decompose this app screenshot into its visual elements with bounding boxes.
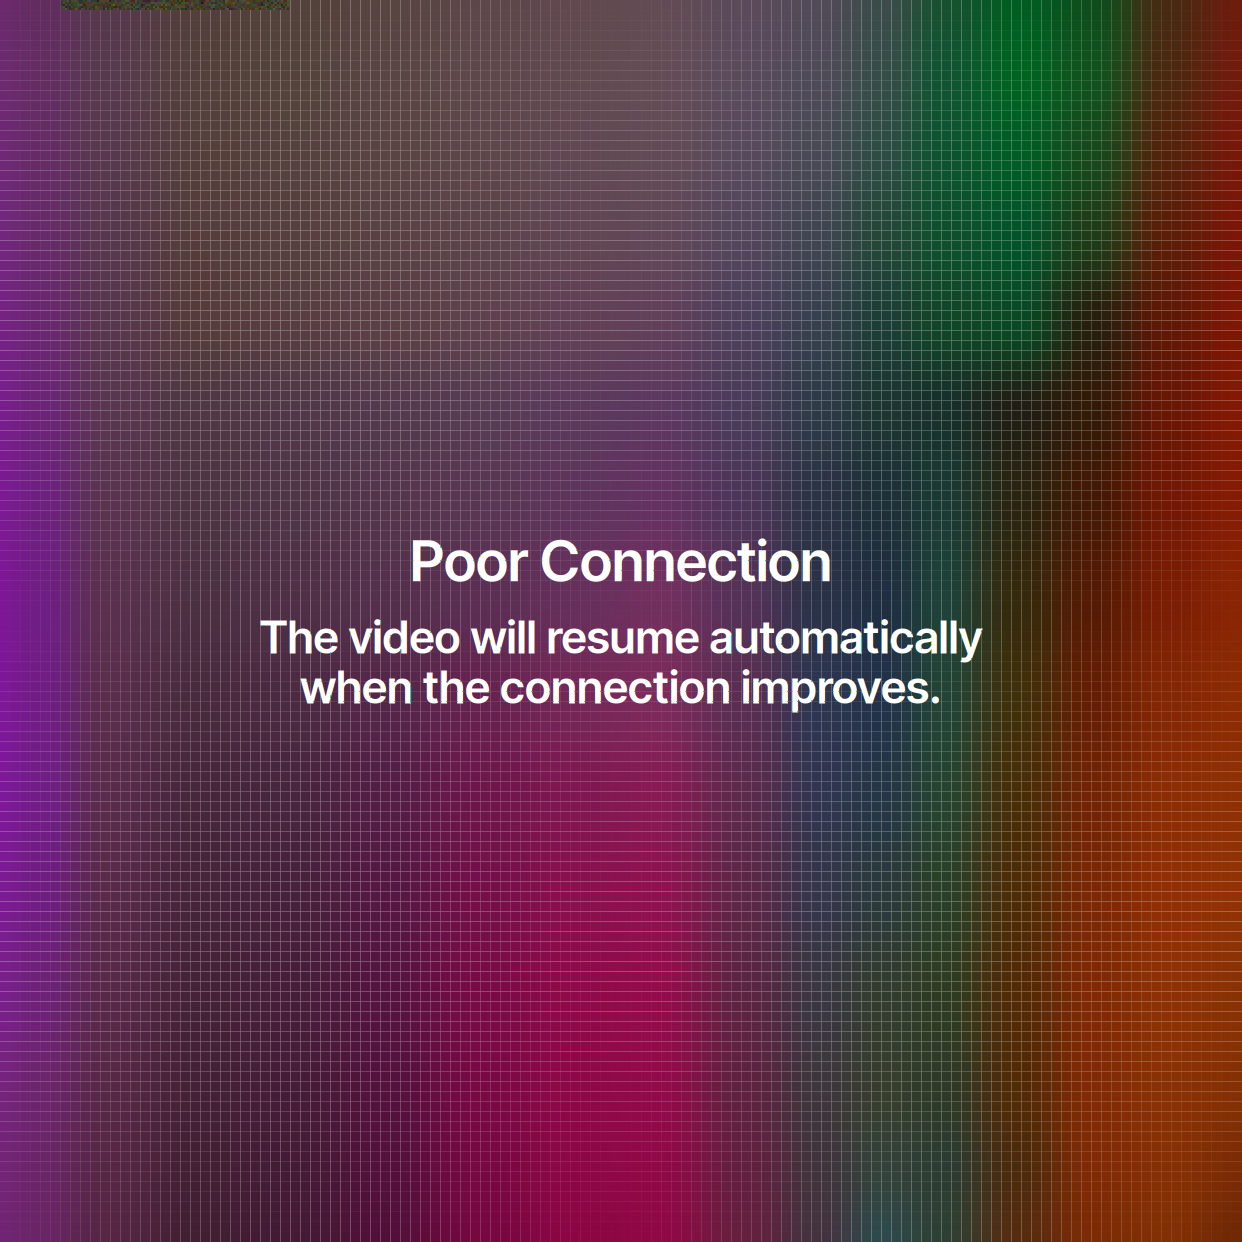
staticText: The video will resume automatically (259, 610, 982, 664)
staticText: Poor Connection (410, 527, 832, 595)
staticText: when the connection improves. (300, 660, 942, 714)
